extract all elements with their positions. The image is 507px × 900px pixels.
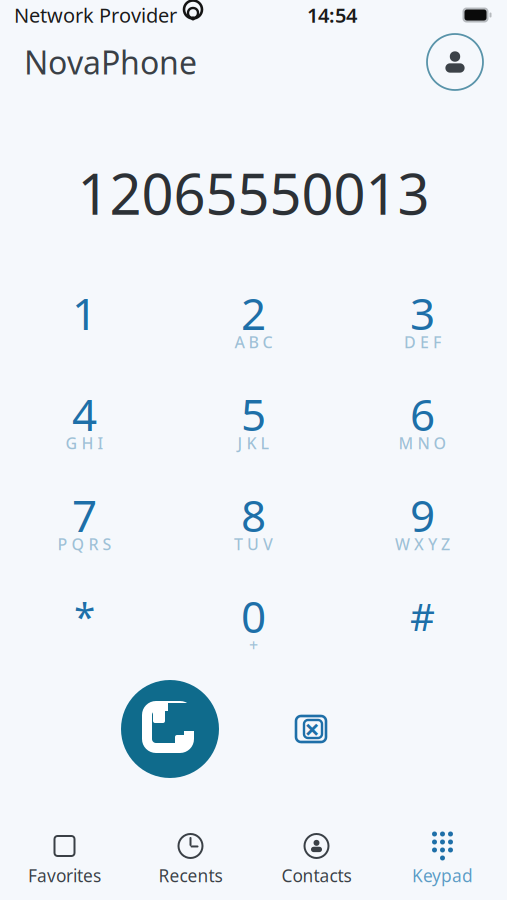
button[interactable]: Favorites [1, 828, 127, 890]
staticText: W X Y Z [395, 533, 450, 555]
staticText: 4 [72, 385, 97, 443]
staticText: Recents [158, 864, 222, 887]
button[interactable]: 1 [14, 278, 154, 366]
staticText: M N O [398, 432, 446, 454]
button[interactable]: * [14, 581, 154, 669]
staticText: + [249, 634, 258, 656]
staticText: D E F [404, 331, 441, 353]
button[interactable]: 6 [352, 379, 492, 467]
button[interactable]: Contacts [253, 828, 379, 890]
staticText: 2 [241, 284, 266, 342]
staticText: J K L [237, 432, 269, 454]
staticText: 12065550013 [77, 156, 429, 230]
button[interactable]: Delete [270, 694, 340, 764]
button[interactable]: 5 [183, 379, 323, 467]
staticText: Network Provider [14, 2, 177, 28]
button[interactable]: # [352, 581, 492, 669]
staticText: 9 [410, 486, 435, 544]
staticText: A B C [234, 331, 272, 353]
staticText: 3 [410, 284, 435, 342]
staticText: 1 [72, 284, 97, 342]
staticText: 6 [410, 385, 435, 443]
staticText: T U V [234, 533, 273, 555]
staticText: Contacts [281, 864, 351, 887]
staticText: 0 [241, 587, 266, 645]
staticText: G H I [65, 432, 103, 454]
button[interactable]: Recents [127, 828, 253, 890]
staticText: Keypad [412, 864, 473, 887]
button[interactable]: Call [120, 679, 220, 779]
staticText: 7 [72, 486, 97, 544]
button[interactable]: 2 [183, 278, 323, 366]
staticText: 8 [241, 486, 266, 544]
button[interactable]: 9 [352, 480, 492, 568]
staticText: 14:54 [307, 2, 357, 28]
staticText: * [74, 590, 95, 642]
staticText: × [304, 711, 319, 747]
button[interactable]: 7 [14, 480, 154, 568]
staticText: 5 [241, 385, 266, 443]
button[interactable]: 4 [14, 379, 154, 467]
button[interactable]: 0 [183, 581, 323, 669]
staticText: NovaPhone [24, 41, 197, 83]
button[interactable]: Keypad [379, 828, 505, 890]
staticText: Favorites [28, 864, 101, 887]
staticText: P Q R S [57, 533, 111, 555]
button[interactable]: 8 [183, 480, 323, 568]
button[interactable]: 3 [352, 278, 492, 366]
button[interactable]: Account [425, 32, 485, 92]
staticText: # [410, 590, 435, 642]
